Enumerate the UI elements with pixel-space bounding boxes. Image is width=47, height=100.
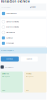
staticText: Store pickup [6,32,15,33]
button[interactable]: Receipt sent [0,64,47,69]
button[interactable]: Same day [0,35,46,41]
staticText: Receipt sent [5,66,13,68]
button[interactable]: Cancel [21,56,38,61]
staticText: Delivered [2,73,9,75]
staticText: Continue [6,58,13,60]
staticText: Pending [26,73,32,75]
staticText: Checking 4821 [6,13,17,14]
staticText: Express shipping [6,26,19,28]
button[interactable]: Standard shipping [0,19,46,24]
button[interactable]: Store pickup [0,30,46,35]
button[interactable]: Express shipping [0,24,46,30]
staticText: Transaction overview [1,0,30,3]
staticText: Scheduled [6,42,14,44]
staticText: View [2,89,5,91]
button[interactable]: Continue [1,56,19,61]
staticText: Standard shipping [6,21,19,23]
staticText: $248.00 [30,6,36,8]
staticText: Arrives Tue, Mar 4 [1,50,14,51]
staticText: Payment status [1,6,11,8]
staticText: Same day [6,37,13,39]
staticText: Mar 9, 2024 [26,75,34,77]
button[interactable]: Scheduled [0,41,46,46]
staticText: Cancel [27,58,32,60]
staticText: Mar 4, 2024 [2,75,10,77]
staticText: View [26,89,29,91]
button[interactable]: Checking 4821 [0,10,46,16]
